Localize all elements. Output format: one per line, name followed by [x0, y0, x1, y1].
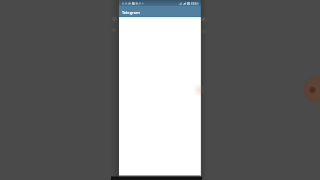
button[interactable]: Telegram	[119, 6, 185, 17]
button[interactable]: Search	[185, 6, 194, 17]
button[interactable]: More options	[194, 6, 201, 17]
staticText: Telegram	[122, 10, 140, 15]
